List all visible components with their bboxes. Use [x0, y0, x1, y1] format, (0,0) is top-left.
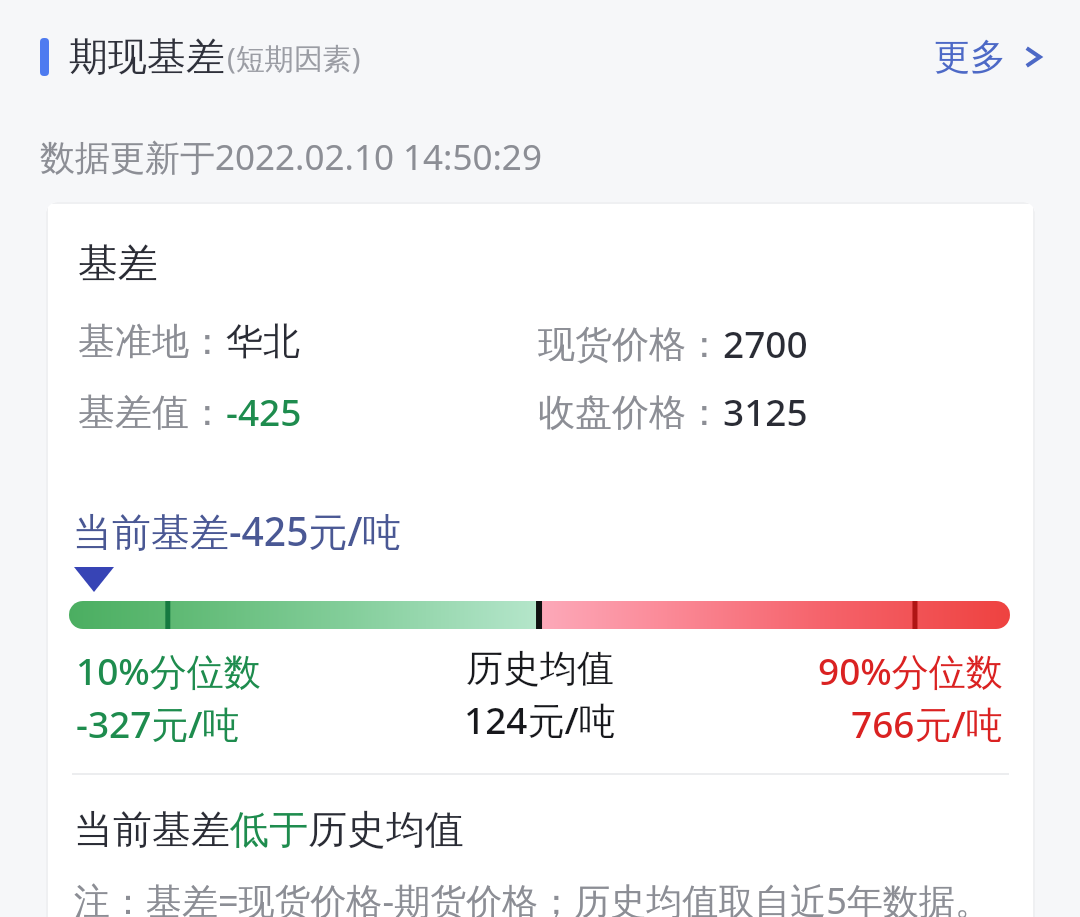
staticText: 10%分位数	[76, 645, 261, 696]
staticText: 3125	[723, 386, 808, 436]
staticText: 基准地：	[78, 318, 226, 365]
staticText: 更多	[934, 34, 1006, 79]
staticText: -425	[226, 386, 302, 436]
staticText: 收盘价格：	[538, 389, 723, 436]
staticText: 历史均值	[466, 645, 614, 692]
staticText: 2700	[723, 318, 808, 368]
staticText: 数据更新于2022.02.10 14:50:29	[40, 133, 542, 181]
staticText: (短期因素)	[227, 38, 361, 78]
staticText: 124元/吨	[464, 694, 616, 745]
staticText: 基差值：	[78, 389, 226, 436]
staticText: 当前基差低于历史均值	[74, 805, 464, 854]
button[interactable]: 更多	[928, 24, 1048, 89]
staticText: 期现基差	[69, 32, 225, 81]
staticText: 当前基差-425元/吨	[73, 504, 402, 557]
other: More	[1024, 41, 1042, 73]
staticText: 现货价格：	[538, 321, 723, 368]
staticText: 华北	[226, 318, 300, 365]
staticText: 90%分位数	[818, 645, 1003, 696]
staticText: 766元/吨	[851, 698, 1003, 749]
staticText: 基差	[78, 238, 158, 288]
button[interactable]: 期现基差	[40, 32, 361, 81]
staticText: 注：基差=现货价格-期货价格；历史均值取自近5年数据。	[74, 876, 991, 917]
staticText: -327元/吨	[76, 698, 240, 749]
